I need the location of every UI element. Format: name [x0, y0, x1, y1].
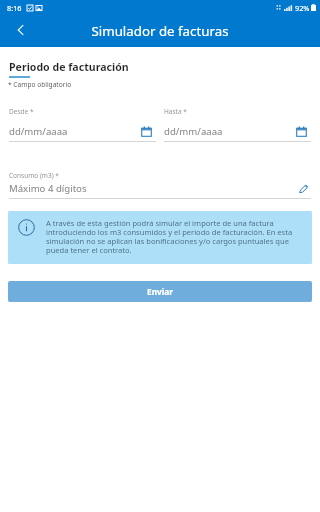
- staticText: Desde *: [9, 107, 34, 116]
- staticText: 8:16: [7, 3, 22, 13]
- button[interactable]: Hasta *: [164, 107, 311, 142]
- staticText: Periodo de facturación: [9, 60, 129, 74]
- other: Open calendar: [296, 126, 307, 137]
- staticText: Enviar: [147, 286, 173, 297]
- staticText: dd/mm/aaaa: [9, 125, 141, 138]
- other: Open calendar: [141, 126, 152, 137]
- staticText: 92%: [295, 3, 310, 13]
- button[interactable]: Enviar: [8, 281, 312, 302]
- button[interactable]: Back: [6, 15, 36, 45]
- staticText: A través de esta gestión podrá simular e…: [46, 218, 295, 255]
- staticText: Hasta *: [164, 107, 187, 116]
- staticText: * Campo obligatorio: [8, 80, 72, 89]
- staticText: dd/mm/aaaa: [164, 125, 296, 138]
- button[interactable]: Consumo (m3) *: [9, 171, 311, 199]
- button[interactable]: Desde *: [9, 107, 156, 142]
- staticText: Consumo (m3) *: [9, 171, 59, 180]
- other: Edit: [298, 184, 308, 194]
- staticText: Máximo 4 dígitos: [9, 182, 298, 195]
- staticText: Simulador de facturas: [0, 22, 320, 40]
